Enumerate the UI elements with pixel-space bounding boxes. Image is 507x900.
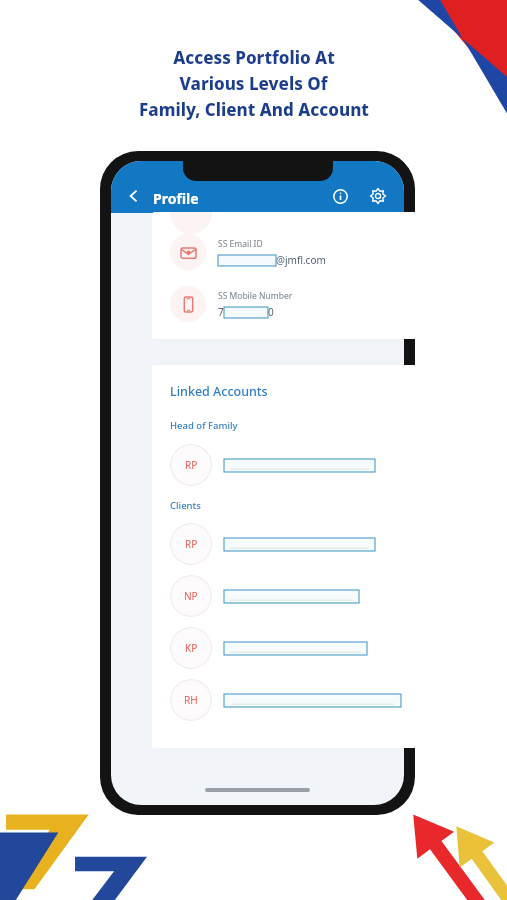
staticText: SS Mobile Number — [218, 290, 293, 302]
staticText: Access Portfolio At — [173, 46, 335, 69]
staticText: RP — [185, 537, 198, 551]
button[interactable]: RH — [170, 674, 417, 726]
staticText: Head of Family — [170, 419, 238, 432]
staticText: RH — [184, 693, 198, 707]
staticText: Profile — [153, 189, 199, 208]
button[interactable]: Information — [328, 184, 352, 208]
button[interactable]: RP — [170, 518, 417, 570]
button[interactable]: Settings — [366, 184, 390, 208]
staticText: @jmfl.com — [276, 253, 326, 267]
staticText: RP — [185, 458, 198, 472]
staticText: Clients — [170, 499, 201, 512]
button[interactable]: Back — [123, 185, 145, 207]
button[interactable]: SS Email ID — [170, 234, 417, 270]
button[interactable]: SS Mobile Number — [170, 286, 417, 322]
staticText: Various Levels Of — [179, 72, 328, 95]
button[interactable]: KP — [170, 622, 417, 674]
staticText: 7 — [218, 305, 224, 319]
button[interactable]: NP — [170, 570, 417, 622]
staticText: SS Email ID — [218, 238, 263, 250]
staticText: NP — [184, 589, 198, 603]
staticText: 0 — [268, 305, 274, 319]
staticText: Family, Client And Account — [139, 98, 369, 121]
staticText: KP — [185, 641, 198, 655]
button[interactable]: RP — [170, 439, 417, 491]
staticText: Linked Accounts — [170, 383, 268, 400]
